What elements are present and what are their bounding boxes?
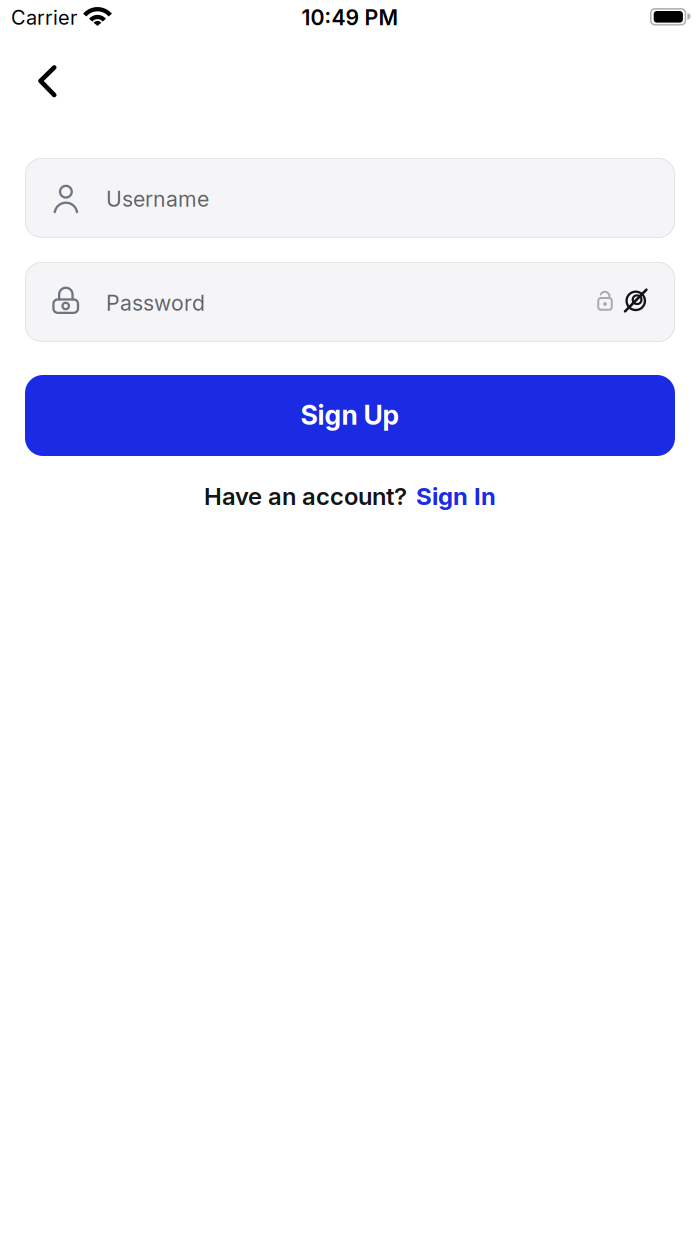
staticText: 10:49 PM xyxy=(301,5,398,30)
button[interactable]: Sign Up xyxy=(25,375,675,456)
staticText: Password xyxy=(106,290,205,316)
staticText: Sign In xyxy=(416,482,496,510)
staticText: Sign Up xyxy=(300,399,399,431)
button[interactable]: Username xyxy=(25,158,675,238)
button[interactable]: Password xyxy=(25,262,675,342)
button[interactable]: Show password xyxy=(614,279,658,323)
staticText: Carrier xyxy=(11,6,77,29)
staticText: Have an account? xyxy=(204,482,407,510)
button[interactable]: Back xyxy=(25,59,69,103)
button[interactable]: Sign In xyxy=(416,482,496,510)
staticText: Username xyxy=(106,186,209,212)
